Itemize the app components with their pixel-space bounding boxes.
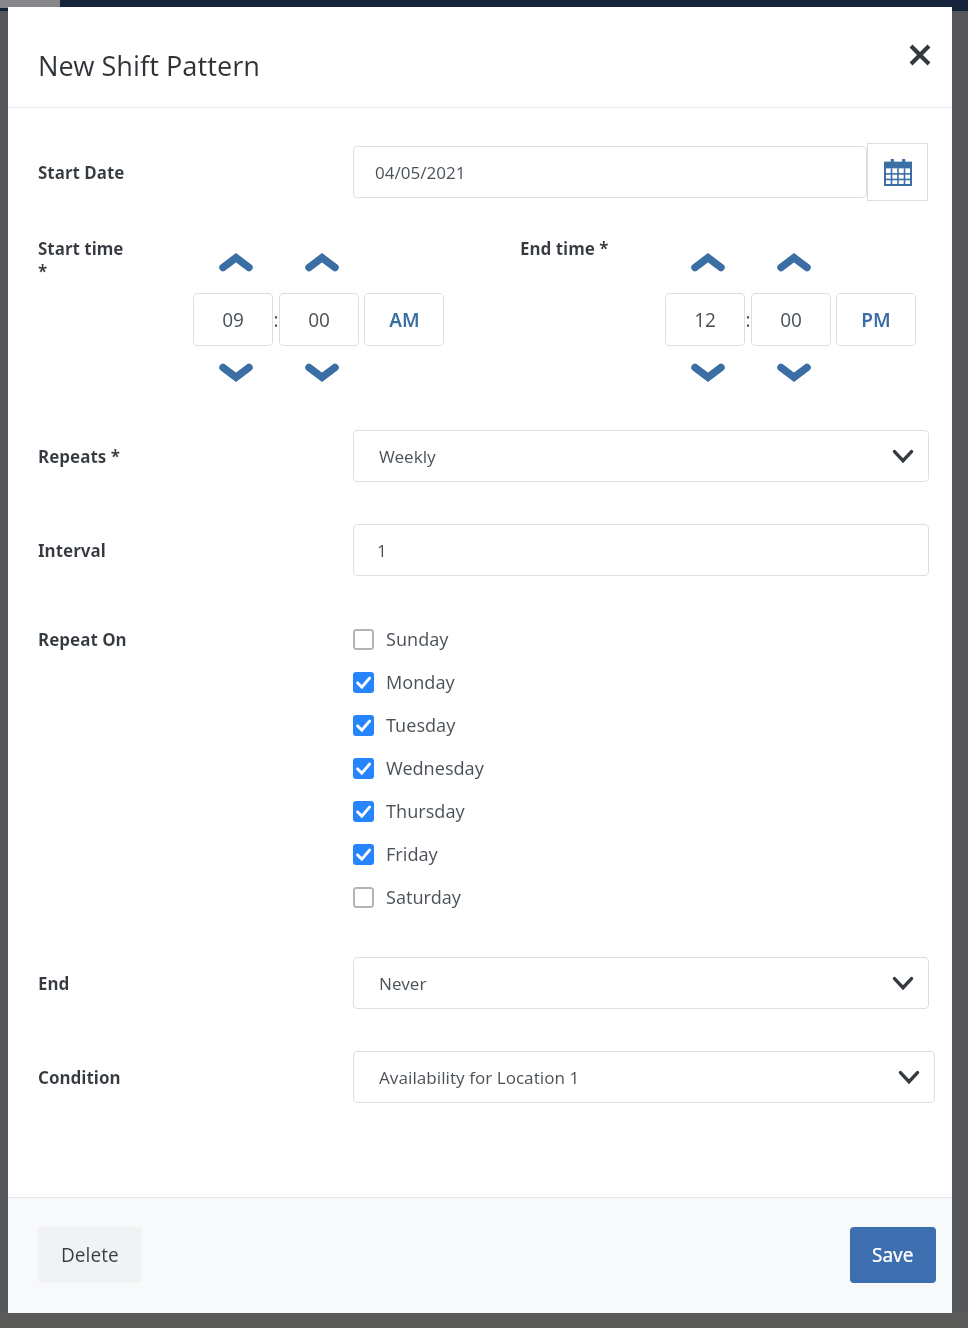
staticText: Sunday (386, 627, 449, 652)
staticText: PM (861, 307, 891, 333)
button[interactable]: Decrease (305, 355, 339, 389)
button[interactable]: Friday (353, 833, 438, 876)
button[interactable]: Never (353, 957, 929, 1009)
staticText: End (38, 972, 353, 995)
button[interactable]: Wednesday (353, 747, 484, 790)
button[interactable]: Thursday (353, 790, 465, 833)
staticText: Friday (386, 842, 438, 867)
button[interactable]: AM (364, 293, 444, 346)
staticText: Never (379, 972, 427, 995)
staticText: Thursday (386, 799, 465, 824)
button[interactable]: Availability for Location 1 (353, 1051, 935, 1103)
button[interactable]: Decrease (219, 355, 253, 389)
staticText: 12 (694, 307, 716, 333)
staticText: Weekly (379, 445, 436, 468)
staticText: Availability for Location 1 (379, 1066, 580, 1089)
button[interactable]: Close (898, 33, 942, 77)
staticText: Wednesday (386, 756, 484, 781)
button[interactable]: Saturday (353, 876, 462, 919)
staticText: Tuesday (386, 713, 456, 738)
button[interactable]: Open calendar (867, 143, 928, 201)
button[interactable]: Sunday (353, 618, 449, 661)
button[interactable]: 12 (665, 293, 745, 346)
staticText: : (745, 307, 751, 333)
staticText: Save (872, 1242, 914, 1268)
staticText: Interval (38, 539, 353, 562)
staticText: End time * (520, 237, 609, 260)
button[interactable]: Increase (691, 246, 725, 280)
staticText: Delete (61, 1242, 119, 1268)
button[interactable]: Delete (38, 1227, 142, 1283)
staticText: Saturday (386, 885, 462, 910)
staticText: 09 (222, 307, 244, 333)
staticText: AM (389, 307, 420, 333)
staticText: 1 (377, 539, 387, 562)
staticText: 00 (780, 307, 802, 333)
button[interactable]: 09 (193, 293, 273, 346)
staticText: Start Date (38, 161, 353, 184)
staticText: New Shift Pattern (38, 47, 261, 84)
button[interactable]: Decrease (777, 355, 811, 389)
staticText: Start time (38, 237, 124, 260)
staticText: 00 (308, 307, 330, 333)
button[interactable]: Tuesday (353, 704, 456, 747)
button[interactable]: Increase (219, 246, 253, 280)
button[interactable]: 1 (353, 524, 929, 576)
staticText: Condition (38, 1066, 353, 1089)
staticText: Repeats * (38, 445, 353, 468)
button[interactable]: Weekly (353, 430, 929, 482)
button[interactable]: Save (850, 1227, 936, 1283)
button[interactable]: 00 (751, 293, 831, 346)
button[interactable]: Increase (777, 246, 811, 280)
staticText: * (38, 260, 48, 283)
staticText: Monday (386, 670, 455, 695)
button[interactable]: 00 (279, 293, 359, 346)
staticText: Repeat On (38, 628, 127, 651)
button[interactable]: Monday (353, 661, 455, 704)
staticText: : (273, 307, 279, 333)
button[interactable]: Increase (305, 246, 339, 280)
button[interactable]: 04/05/2021 (353, 146, 867, 198)
staticText: 04/05/2021 (375, 161, 466, 184)
button[interactable]: Decrease (691, 355, 725, 389)
button[interactable]: PM (836, 293, 916, 346)
